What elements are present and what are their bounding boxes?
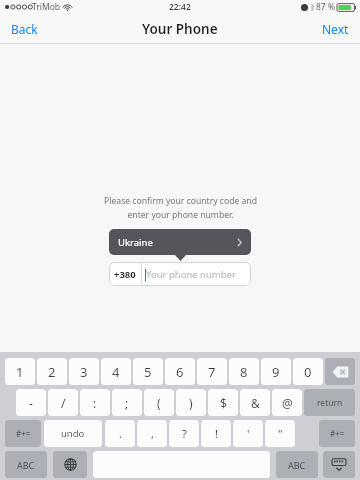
staticText: +380 [114,268,136,281]
staticText: ? [182,426,187,441]
button[interactable]: #+= [319,420,355,447]
button[interactable]: " [265,420,295,447]
staticText: - [29,395,33,411]
button[interactable]: 7 [197,358,227,385]
button[interactable]: ) [176,389,206,416]
button[interactable]: 0 [293,358,323,385]
button[interactable]: 1 [5,358,35,385]
staticText: ABC [288,459,306,471]
staticText: TriMob [32,1,61,13]
button[interactable]: ABC [276,451,318,478]
button[interactable]: 9 [261,358,291,385]
button[interactable]: @ [272,389,302,416]
button[interactable]: #+= [5,420,41,447]
staticText: 9 [272,363,280,381]
staticText: 1 [16,363,24,381]
staticText: 22:42 [169,1,191,13]
staticText: Ukraine [118,236,153,249]
button[interactable]: 6 [165,358,195,385]
staticText: undo [61,427,85,440]
staticText: ( [157,395,161,411]
staticText: ' [247,426,250,441]
staticText: 2 [48,363,56,381]
button[interactable]: & [240,389,270,416]
staticText: 8 [240,363,248,381]
button[interactable]: undo [44,420,102,447]
staticText: return [317,397,343,409]
staticText: #+= [330,428,345,439]
button[interactable]: , [137,420,167,447]
staticText: Next [322,21,349,37]
button[interactable]: Back [0,14,49,44]
button[interactable]: - [16,389,46,416]
staticText: " [278,426,283,441]
staticText: @ [282,395,293,411]
button[interactable]: ABC [5,451,47,478]
staticText: . [119,426,122,441]
button[interactable]: ? [169,420,199,447]
staticText: ! [215,426,218,441]
button[interactable]: return [304,389,355,416]
button[interactable]: 4 [101,358,131,385]
staticText: ) [189,395,193,411]
staticText: Please confirm your country code and [104,195,257,207]
button[interactable]: Change keyboard language [53,451,87,478]
staticText: , [151,426,154,441]
staticText: Your phone number [146,268,236,281]
staticText: ABC [17,459,35,471]
staticText: 0 [304,363,312,381]
staticText: enter your phone number. [127,209,234,221]
button[interactable]: 5 [133,358,163,385]
button[interactable]: Next [311,14,360,44]
staticText: Back [11,21,38,37]
staticText: / [61,395,66,411]
button[interactable]: 8 [229,358,259,385]
staticText: 87 % [316,1,335,13]
button[interactable]: $ [208,389,238,416]
staticText: : [93,395,97,411]
button[interactable]: 2 [37,358,67,385]
button[interactable]: +380 [109,262,251,286]
staticText: $ [220,395,227,411]
staticText: 5 [144,363,152,381]
button[interactable]: 3 [69,358,99,385]
staticText: 6 [176,363,184,381]
staticText: Your Phone [142,20,218,38]
button[interactable]: ! [201,420,231,447]
button[interactable]: / [48,389,78,416]
staticText: 4 [112,363,120,381]
staticText: & [251,395,260,411]
button[interactable]: : [80,389,110,416]
button[interactable]: Backspace [325,358,355,385]
button[interactable]: ; [112,389,142,416]
button[interactable]: Hide keyboard [323,451,355,478]
button[interactable]: ' [233,420,263,447]
staticText: 7 [208,363,216,381]
button[interactable]: Ukraine [109,229,251,255]
staticText: 3 [80,363,88,381]
button[interactable]: . [105,420,135,447]
staticText: ; [125,395,129,411]
staticText: #+= [16,428,31,439]
button[interactable]: ( [144,389,174,416]
